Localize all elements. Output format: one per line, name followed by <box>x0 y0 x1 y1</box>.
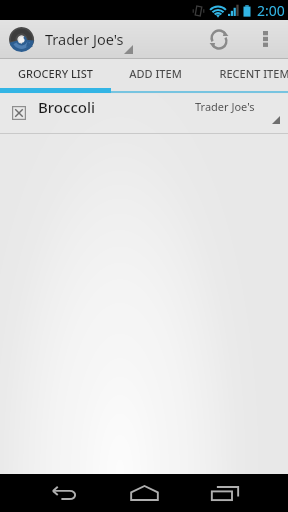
button[interactable]: Broccoli <box>0 94 288 133</box>
button[interactable]: More options <box>243 20 288 58</box>
staticText: 2:00 <box>257 1 285 20</box>
button[interactable]: Home <box>108 474 180 512</box>
button[interactable]: Back <box>28 474 100 512</box>
button[interactable]: Recent apps <box>189 474 261 512</box>
button[interactable]: GROCERY LIST <box>0 59 111 88</box>
staticText: Trader Joe's <box>45 29 124 49</box>
button[interactable]: Trader Joe's <box>0 20 137 58</box>
button[interactable]: RECENT ITEMS <box>200 59 288 88</box>
staticText: GROCERY LIST <box>18 66 93 81</box>
staticText: ADD ITEM <box>129 66 182 81</box>
staticText: Broccoli <box>38 97 96 117</box>
button[interactable]: ADD ITEM <box>111 59 200 88</box>
button[interactable]: Sync <box>195 20 243 58</box>
staticText: Trader Joe's <box>195 99 255 114</box>
staticText: RECENT ITEMS <box>219 66 288 81</box>
